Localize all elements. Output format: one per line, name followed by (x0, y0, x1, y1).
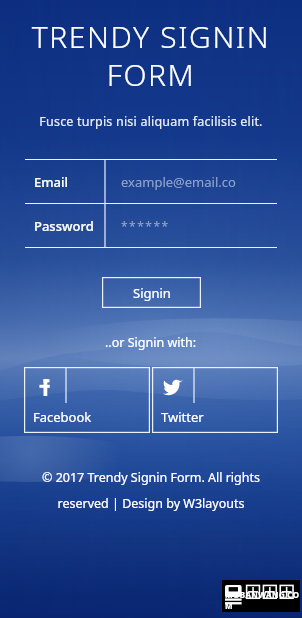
staticText: Email (34, 173, 69, 191)
button[interactable]: Email (25, 160, 277, 203)
staticText: Facebook (33, 408, 92, 426)
button[interactable]: Password (25, 204, 277, 247)
staticText: ****** (121, 218, 170, 234)
staticText: MOBANWANG.COM (225, 589, 300, 611)
staticText: Fusce turpis nisi aliquam facilisis elit… (12, 113, 290, 130)
button[interactable]: Sign in with Twitter (152, 367, 278, 433)
button[interactable]: Sign in with Facebook (24, 367, 150, 433)
staticText: ..or Signin with: (105, 334, 197, 351)
button[interactable]: Signin (102, 277, 201, 308)
staticText: Twitter (161, 408, 204, 426)
staticText: TRENDY SIGNIN FORM (10, 16, 292, 95)
staticText: Signin (133, 284, 171, 302)
staticText: © 2017 Trendy Signin Form. All rights re… (28, 469, 274, 511)
staticText: Password (34, 217, 94, 235)
staticText: example@email.co (121, 173, 236, 191)
